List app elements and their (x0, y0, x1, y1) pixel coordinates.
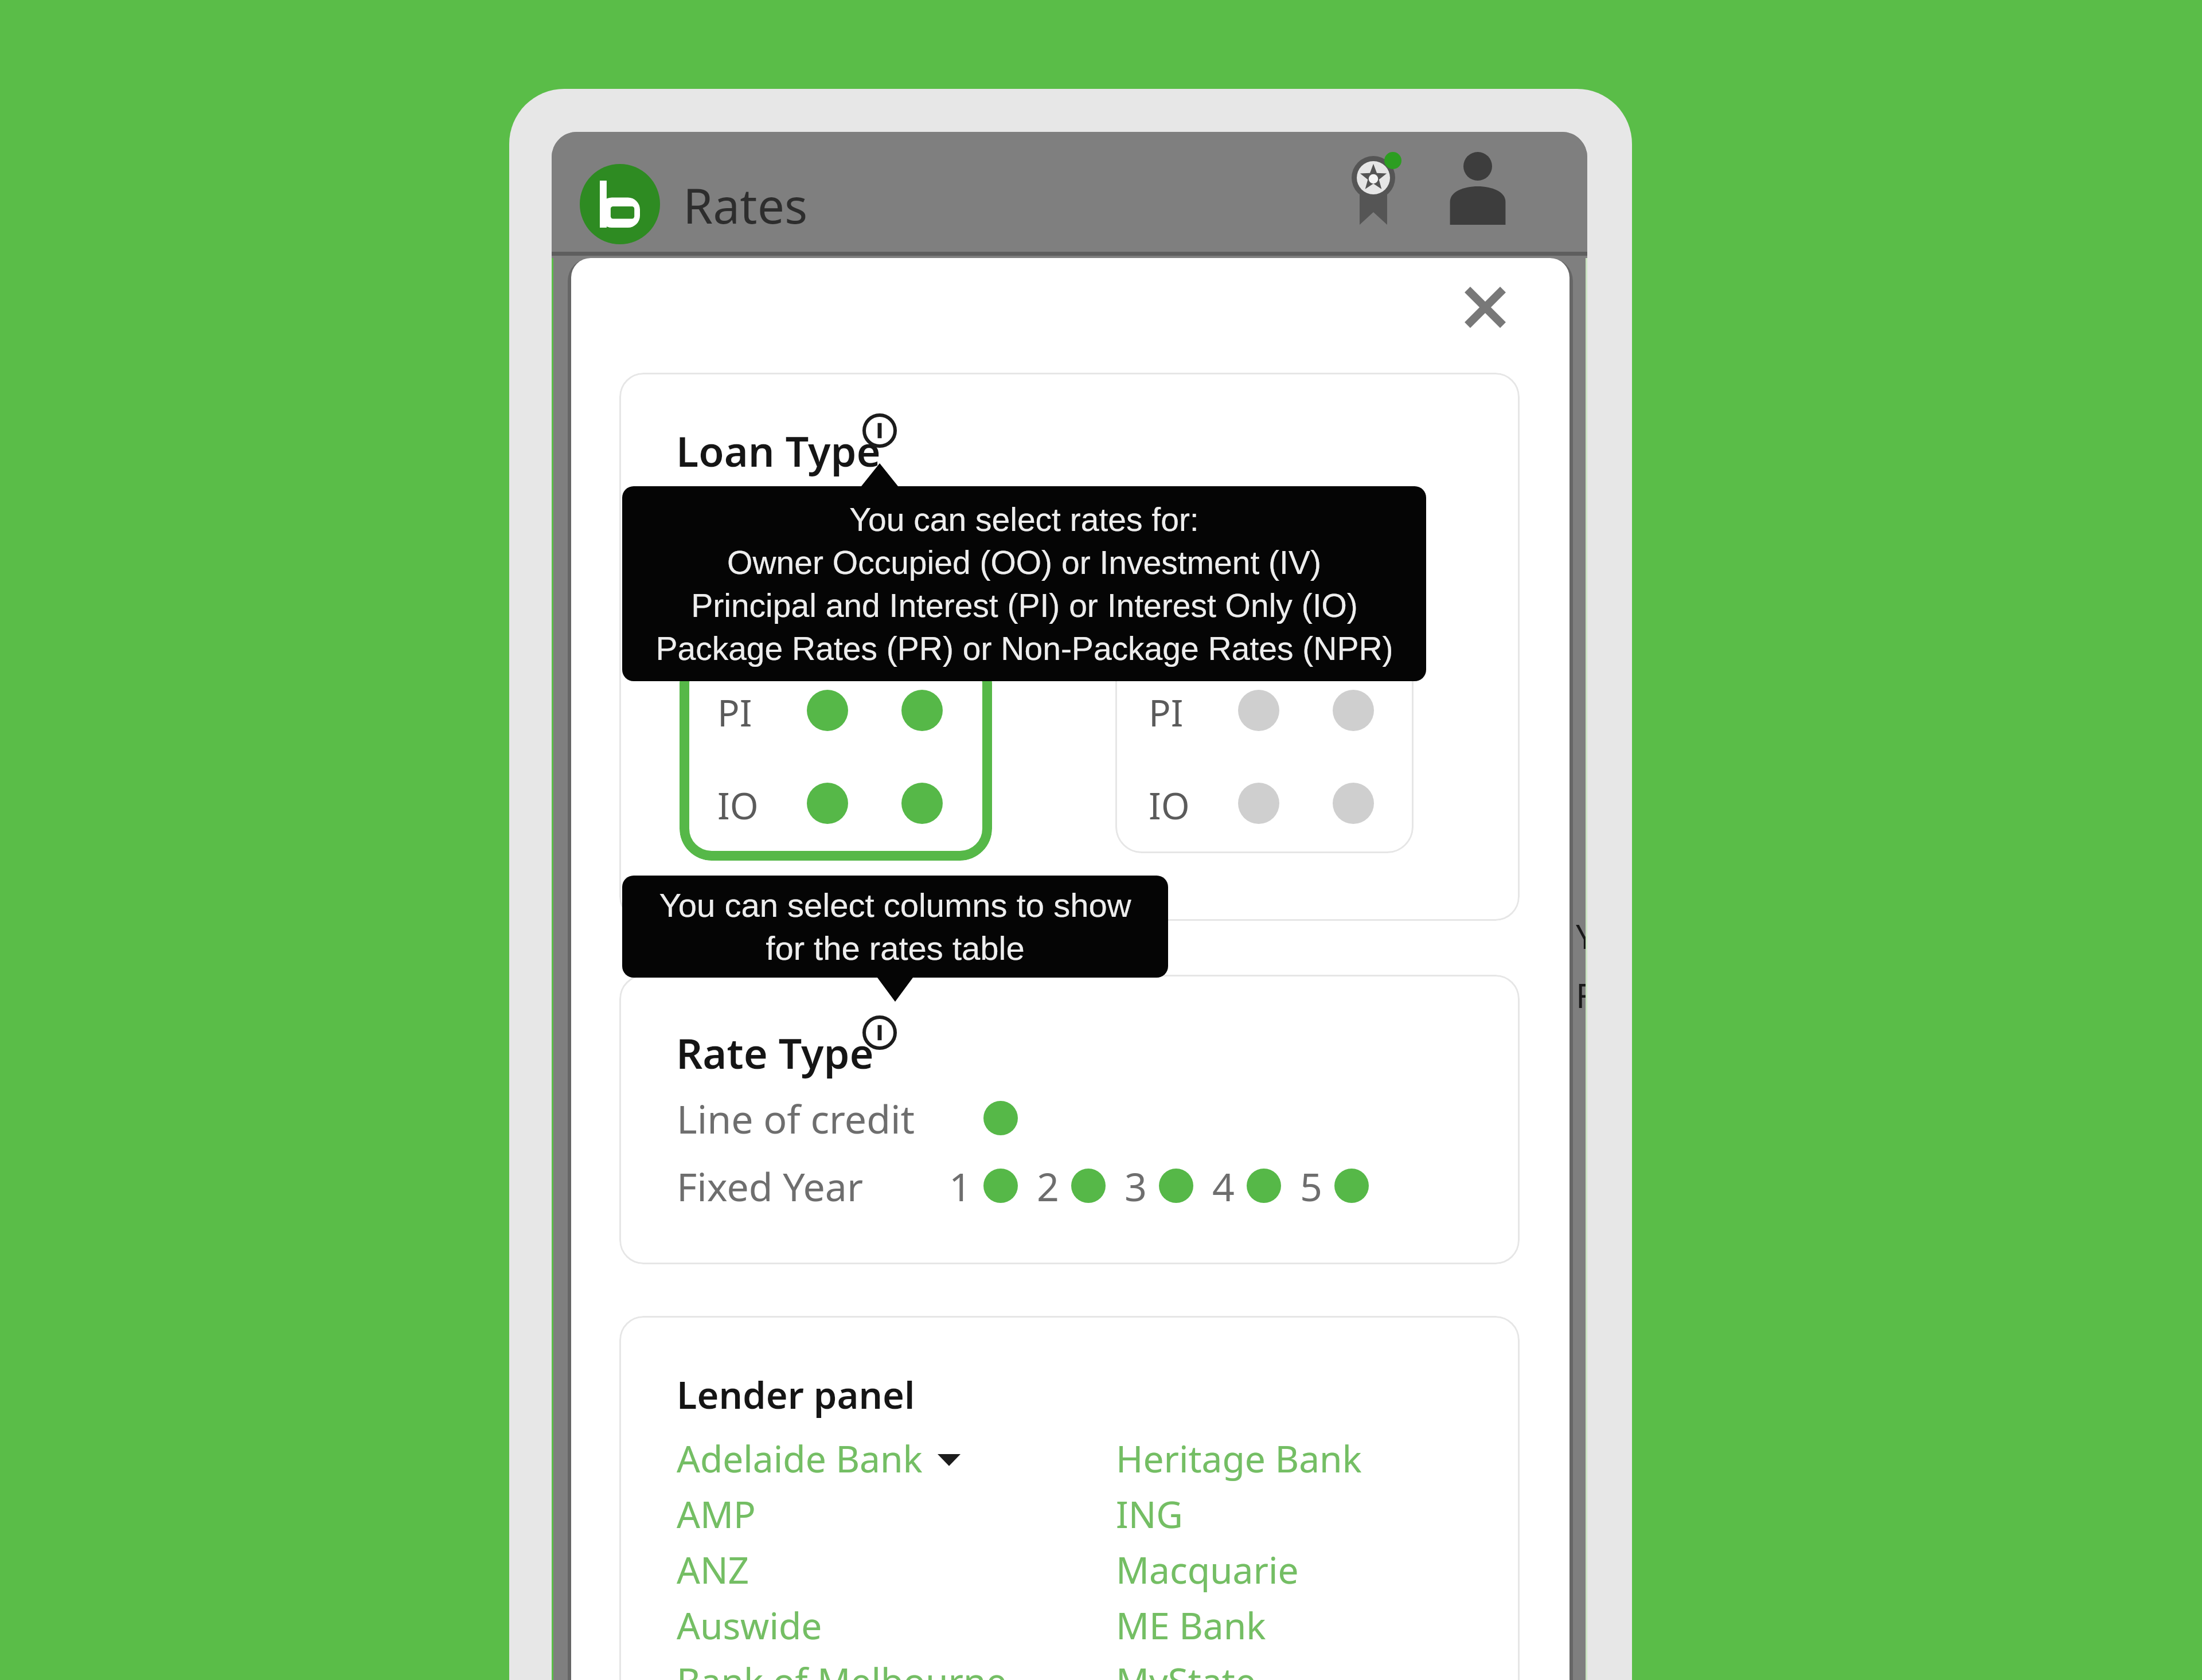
button[interactable]: About Rate Type (862, 1015, 897, 1050)
button[interactable]: Auswide (677, 1597, 822, 1653)
staticText: for the rates table (766, 929, 1025, 967)
button[interactable] (1159, 1169, 1193, 1203)
staticText: Rate Type (676, 1025, 874, 1081)
staticText: You can select columns to show (659, 886, 1131, 924)
staticText: Line of credit (677, 1092, 915, 1145)
staticText: MyState (1116, 1656, 1256, 1680)
staticText: You can select rates for: (849, 501, 1199, 538)
staticText: Fi (1576, 972, 1587, 1018)
button[interactable]: Heritage Bank (1116, 1431, 1362, 1486)
staticText: Auswide (677, 1600, 822, 1650)
staticText: 3 (1125, 1159, 1147, 1213)
staticText: Package Rates (PR) or Non-Package Rates … (655, 630, 1393, 667)
button[interactable]: Macquarie (1116, 1542, 1299, 1597)
staticText: IO (1149, 780, 1190, 826)
staticText: 5 (1300, 1159, 1322, 1213)
staticText: PI (1149, 687, 1184, 733)
staticText: Owner Occupied (OO) or Investment (IV) (727, 544, 1321, 581)
staticText: ME Bank (1116, 1600, 1266, 1650)
staticText: Adelaide Bank (677, 1433, 923, 1483)
button[interactable] (983, 1101, 1018, 1135)
staticText: 1 (949, 1159, 971, 1213)
staticText: Principal and Interest (PI) or Interest … (691, 587, 1358, 624)
staticText: IO (717, 780, 759, 826)
button[interactable]: ME Bank (1116, 1597, 1266, 1653)
staticText: ANZ (677, 1545, 749, 1595)
staticText: Bank of Melbourne (677, 1656, 1007, 1680)
staticText: Heritage Bank (1116, 1433, 1362, 1483)
staticText: Macquarie (1116, 1545, 1299, 1595)
staticText: Lender panel (677, 1369, 915, 1420)
staticText: Loan Type (676, 423, 881, 479)
button[interactable]: ANZ (677, 1542, 749, 1597)
button[interactable] (983, 1169, 1018, 1203)
button[interactable]: Close (1442, 264, 1528, 350)
button[interactable] (1334, 1169, 1369, 1203)
button[interactable]: Adelaide Bank (677, 1431, 961, 1486)
staticText: ING (1116, 1489, 1183, 1539)
button[interactable]: Home (580, 164, 660, 244)
staticText: Yo (1576, 913, 1587, 959)
staticText: AMP (677, 1489, 756, 1539)
button[interactable]: PI (680, 651, 992, 861)
button[interactable]: About Loan Type (862, 413, 897, 448)
staticText: 4 (1212, 1159, 1235, 1213)
button[interactable]: PI (1115, 655, 1414, 853)
button[interactable]: Bank of Melbourne (677, 1653, 1007, 1680)
button[interactable]: Profile (1438, 139, 1517, 245)
button[interactable]: Rewards (1332, 143, 1415, 244)
staticText: Fixed Year (677, 1159, 863, 1213)
staticText: PI (717, 687, 752, 733)
button[interactable]: AMP (677, 1486, 756, 1542)
button[interactable] (1247, 1169, 1281, 1203)
button[interactable]: MyState (1116, 1653, 1256, 1680)
staticText: Rates (683, 172, 808, 237)
button[interactable]: ING (1116, 1486, 1183, 1542)
staticText: 2 (1037, 1159, 1059, 1213)
button[interactable] (1071, 1169, 1106, 1203)
